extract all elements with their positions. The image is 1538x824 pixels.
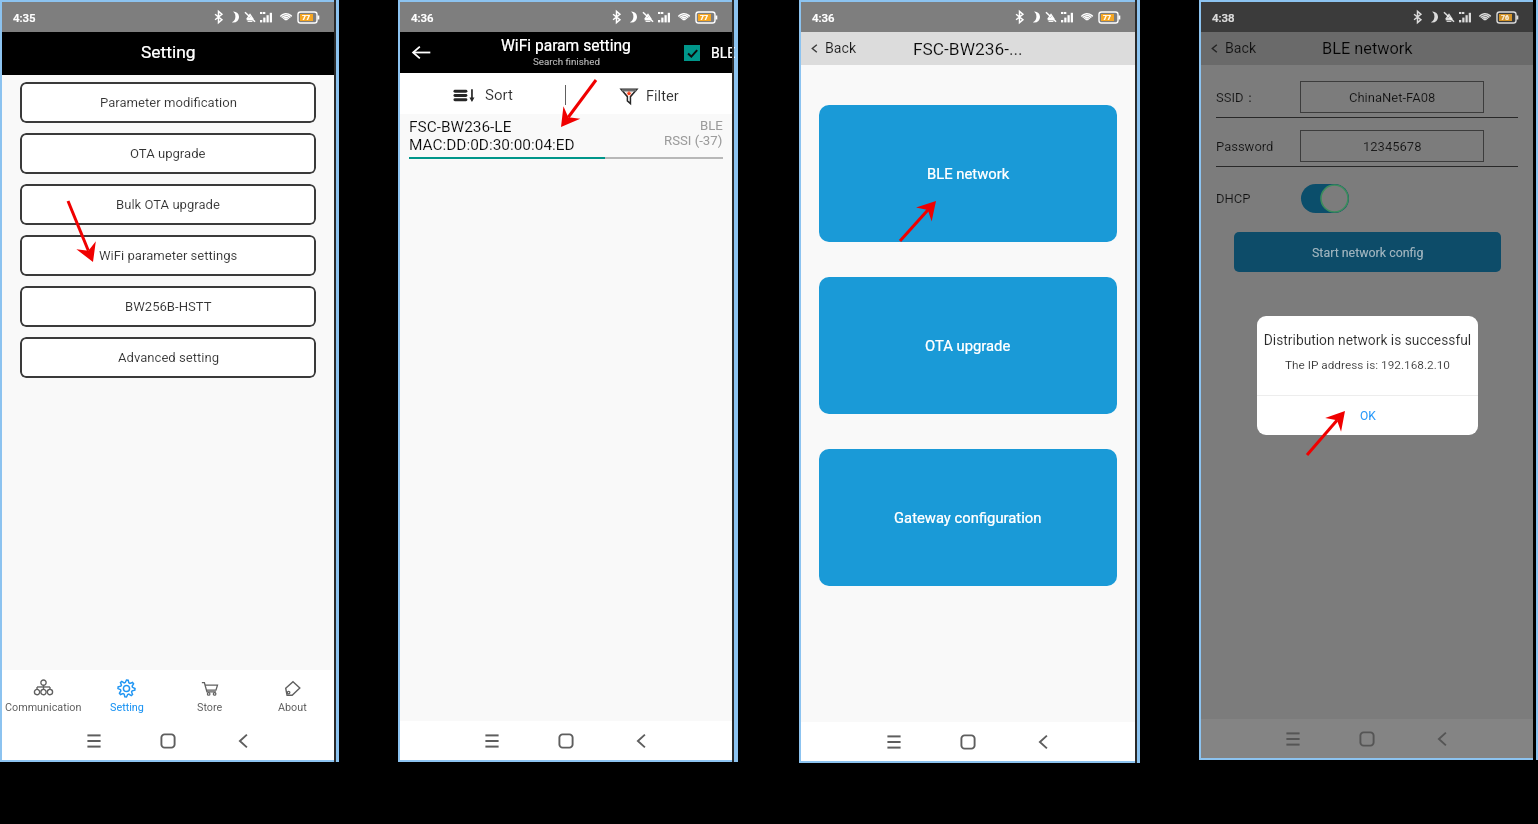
button[interactable]: Communication (2, 670, 85, 721)
button[interactable]: FSC-BW236-LE (409, 118, 723, 154)
staticText: 4:36 (812, 11, 835, 24)
staticText: 76 (1501, 14, 1510, 21)
button[interactable]: BW256B-HSTT (20, 286, 316, 327)
staticText: 77 (700, 14, 709, 21)
staticText: ChinaNet-FA08 (1349, 90, 1436, 105)
button[interactable]: Back (1428, 731, 1454, 747)
button[interactable]: BLE network (819, 105, 1117, 242)
staticText: Distribution network is successful (1257, 332, 1478, 348)
button[interactable]: Recents (1280, 731, 1306, 747)
button[interactable]: Filter (566, 76, 732, 114)
staticText: RSSI (-37) (664, 133, 723, 148)
button[interactable]: DHCP toggle (1301, 184, 1349, 213)
staticText: BLE network (1322, 39, 1413, 58)
button[interactable]: Advanced setting (20, 337, 316, 378)
staticText: BW256B-HSTT (125, 299, 212, 314)
button[interactable]: Recents (881, 734, 907, 750)
staticText: OTA upgrade (925, 337, 1011, 354)
staticText: Advanced setting (118, 350, 219, 365)
staticText: Filter (646, 87, 679, 104)
button[interactable]: Home (155, 733, 181, 749)
staticText: Back (1225, 40, 1257, 57)
staticText: Sort (485, 86, 513, 104)
button[interactable]: OTA upgrade (819, 277, 1117, 414)
button[interactable]: Store (168, 670, 251, 721)
staticText: OTA upgrade (130, 146, 206, 161)
button[interactable]: Recents (81, 733, 107, 749)
staticText: Back (825, 40, 857, 57)
button[interactable]: Back (1208, 40, 1257, 57)
button[interactable]: Bulk OTA upgrade (20, 184, 316, 225)
button[interactable]: OTA upgrade (20, 133, 316, 174)
button[interactable]: Home (553, 733, 579, 749)
staticText: 12345678 (1363, 139, 1422, 154)
button[interactable]: ChinaNet-FA08 (1300, 81, 1484, 113)
button[interactable]: Parameter modification (20, 82, 316, 123)
staticText: FSC-BW236-LE (409, 118, 512, 136)
staticText: BLE network (927, 165, 1010, 182)
staticText: BLE (711, 45, 741, 61)
button[interactable]: Back (229, 733, 255, 749)
staticText: BLE (700, 118, 723, 133)
staticText: DHCP (1216, 191, 1251, 206)
staticText: Gateway configuration (894, 509, 1042, 526)
button[interactable]: 12345678 (1300, 130, 1484, 162)
staticText: WiFi parameter settings (99, 248, 238, 263)
staticText: OK (1360, 409, 1376, 423)
staticText: Store (197, 701, 223, 714)
staticText: 77 (1103, 14, 1112, 21)
staticText: Parameter modification (100, 95, 237, 110)
button[interactable]: BLE (684, 45, 741, 61)
button[interactable]: Start network config (1234, 232, 1501, 272)
staticText: Search finished (533, 56, 600, 67)
button[interactable]: Back (1029, 734, 1055, 750)
button[interactable]: Back (627, 733, 653, 749)
staticText: FSC-BW236-... (913, 39, 1023, 59)
staticText: Bulk OTA upgrade (116, 197, 220, 212)
staticText: SSID： (1216, 89, 1257, 105)
staticText: Setting (141, 42, 196, 62)
button[interactable]: Gateway configuration (819, 449, 1117, 586)
button[interactable]: OK (1257, 396, 1478, 435)
staticText: 4:35 (13, 11, 36, 24)
button[interactable]: Home (1354, 731, 1380, 747)
staticText: Start network config (1312, 245, 1424, 260)
button[interactable]: About (251, 670, 334, 721)
button[interactable]: Sort (400, 76, 565, 114)
button[interactable]: Recents (479, 733, 505, 749)
staticText: MAC:DD:0D:30:00:04:ED (409, 136, 575, 154)
staticText: Setting (110, 701, 144, 714)
staticText: Communication (5, 701, 82, 714)
staticText: About (278, 701, 307, 714)
staticText: Password (1216, 139, 1274, 154)
button[interactable]: WiFi parameter settings (20, 235, 316, 276)
staticText: The IP address is: 192.168.2.10 (1257, 358, 1478, 372)
button[interactable]: Back (411, 42, 432, 63)
staticText: 77 (302, 14, 311, 21)
staticText: 4:38 (1212, 11, 1235, 24)
button[interactable]: Setting (85, 670, 168, 721)
staticText: 4:36 (411, 11, 434, 24)
button[interactable]: Home (955, 734, 981, 750)
staticText: WiFi param setting (501, 37, 631, 55)
button[interactable]: Back (808, 40, 857, 57)
